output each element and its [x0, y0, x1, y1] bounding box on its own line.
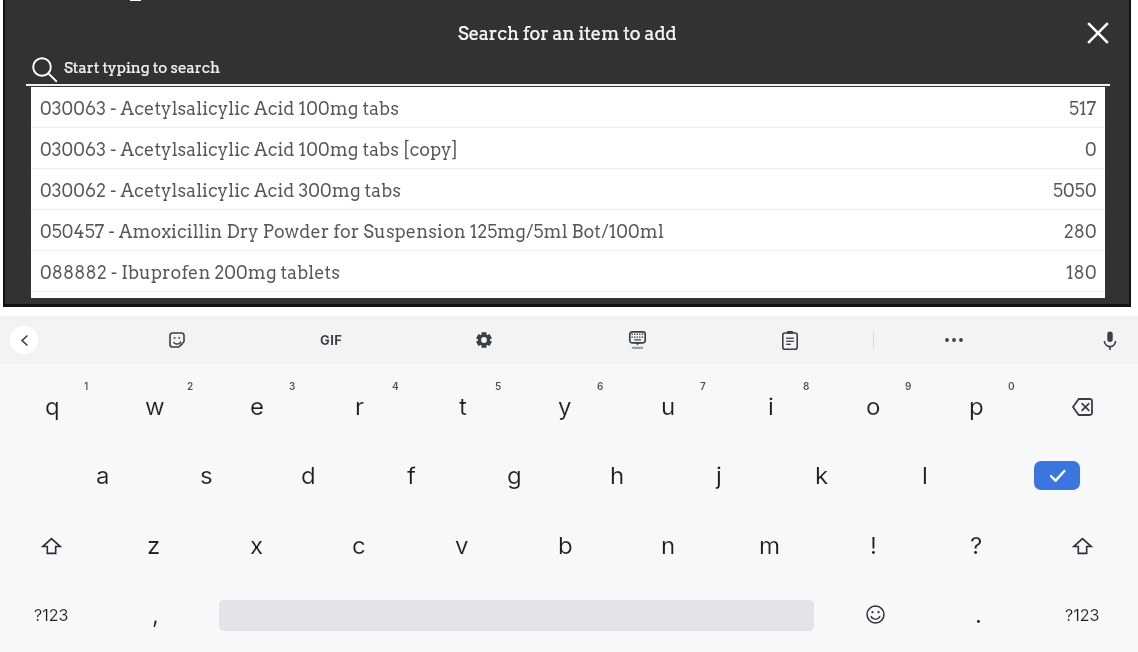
staticText: z — [147, 531, 161, 560]
staticText: d — [301, 461, 316, 490]
staticText: 6 — [597, 380, 604, 392]
button[interactable]: Keyboard modes — [615, 316, 659, 364]
button[interactable]: 030063 - Acetylsalicylic Acid 100mg tabs… — [31, 128, 1105, 168]
staticText: , — [152, 600, 159, 629]
staticText: . — [975, 600, 982, 629]
button[interactable]: 088882 - Ibuprofen 200mg tablets — [31, 251, 1105, 291]
button[interactable]: v — [412, 511, 512, 580]
button[interactable]: u — [618, 372, 718, 441]
staticText: 4 — [392, 380, 399, 392]
staticText: 0 — [1008, 380, 1015, 392]
staticText: h — [610, 461, 625, 490]
button[interactable]: ? — [926, 511, 1026, 580]
button[interactable]: 050457 - Amoxicillin Dry Powder for Susp… — [31, 210, 1105, 250]
staticText: ! — [870, 531, 877, 560]
staticText: f — [407, 461, 416, 490]
staticText: m — [759, 531, 781, 560]
staticText: r — [355, 392, 365, 421]
button[interactable]: b — [515, 511, 615, 580]
staticText: e — [250, 392, 264, 421]
staticText: ? — [970, 531, 983, 560]
button[interactable]: y — [515, 372, 615, 441]
button[interactable]: GIF — [309, 316, 353, 364]
staticText: s — [200, 461, 213, 490]
button[interactable]: w — [105, 372, 205, 441]
staticText: 088882 - Ibuprofen 200mg tablets — [40, 262, 1066, 284]
staticText: w — [145, 392, 165, 421]
staticText: 050457 - Amoxicillin Dry Powder for Susp… — [40, 221, 1064, 243]
button[interactable]: ?123 — [1032, 580, 1132, 649]
button[interactable]: i — [721, 372, 821, 441]
button[interactable]: Shift — [1, 511, 101, 580]
button[interactable]: ! — [823, 511, 923, 580]
button[interactable]: , — [105, 580, 205, 649]
button[interactable]: o — [823, 372, 923, 441]
staticText: 280 — [1064, 221, 1097, 243]
staticText: b — [558, 531, 573, 560]
button[interactable]: l — [875, 441, 975, 510]
staticText: q — [45, 392, 60, 421]
staticText: 030063 - Acetylsalicylic Acid 100mg tabs — [40, 98, 1069, 120]
staticText: 3 — [289, 380, 296, 392]
button[interactable]: Back — [10, 326, 38, 354]
button[interactable]: r — [310, 372, 410, 441]
button[interactable]: n — [618, 511, 718, 580]
staticText: n — [661, 531, 676, 560]
staticText: v — [455, 531, 469, 560]
staticText: t — [459, 392, 467, 421]
staticText: GIF — [320, 332, 343, 348]
button[interactable]: 030063 - Acetylsalicylic Acid 100mg tabs — [31, 87, 1105, 127]
staticText: a — [96, 461, 110, 490]
button[interactable]: c — [309, 511, 409, 580]
button[interactable]: t — [413, 372, 513, 441]
button[interactable]: h — [567, 441, 667, 510]
button[interactable]: ?123 — [1, 580, 101, 649]
button[interactable]: g — [464, 441, 564, 510]
button[interactable]: e — [207, 372, 307, 441]
button[interactable]: k — [772, 441, 872, 510]
staticText: j — [716, 461, 722, 490]
button[interactable]: Voice input — [1088, 316, 1132, 364]
button[interactable]: Emoji — [825, 580, 925, 649]
staticText: k — [815, 461, 829, 490]
staticText: 180 — [1066, 262, 1097, 284]
button[interactable]: d — [258, 441, 358, 510]
button[interactable]: Enter — [1034, 461, 1080, 490]
button[interactable]: Shift — [1032, 511, 1132, 580]
staticText: 1 — [84, 380, 89, 392]
staticText: i — [768, 392, 774, 421]
staticText: 8 — [803, 380, 810, 392]
button[interactable]: m — [720, 511, 820, 580]
button[interactable]: Backspace — [1032, 372, 1132, 441]
staticText: o — [866, 392, 881, 421]
button[interactable]: x — [207, 511, 307, 580]
button[interactable]: j — [669, 441, 769, 510]
button[interactable]: p — [926, 372, 1026, 441]
staticText: ?123 — [34, 605, 69, 624]
staticText: Search for an item to add — [458, 23, 677, 45]
button[interactable]: Stickers — [155, 316, 199, 364]
button[interactable]: 030062 - Acetylsalicylic Acid 300mg tabs — [31, 169, 1105, 209]
staticText: 030062 - Acetylsalicylic Acid 300mg tabs — [40, 180, 1053, 202]
button[interactable]: Close — [1074, 9, 1122, 57]
button[interactable]: z — [104, 511, 204, 580]
button[interactable]: f — [361, 441, 461, 510]
button[interactable]: a — [53, 441, 153, 510]
button[interactable]: More options — [932, 316, 976, 364]
staticText: 9 — [905, 380, 912, 392]
staticText: 030063 - Acetylsalicylic Acid 100mg tabs… — [40, 139, 1085, 161]
button[interactable]: q — [2, 372, 102, 441]
staticText: c — [352, 531, 366, 560]
staticText: 0 — [1085, 139, 1097, 161]
staticText: 5 — [495, 380, 502, 392]
staticText: ?123 — [1065, 605, 1100, 624]
button[interactable]: s — [156, 441, 256, 510]
staticText: y — [558, 392, 572, 421]
staticText: 2 — [187, 380, 194, 392]
button[interactable]: . — [928, 580, 1028, 649]
staticText: l — [922, 461, 928, 490]
button[interactable]: Settings — [462, 316, 506, 364]
staticText: u — [661, 392, 676, 421]
button[interactable]: Clipboard — [768, 316, 812, 364]
